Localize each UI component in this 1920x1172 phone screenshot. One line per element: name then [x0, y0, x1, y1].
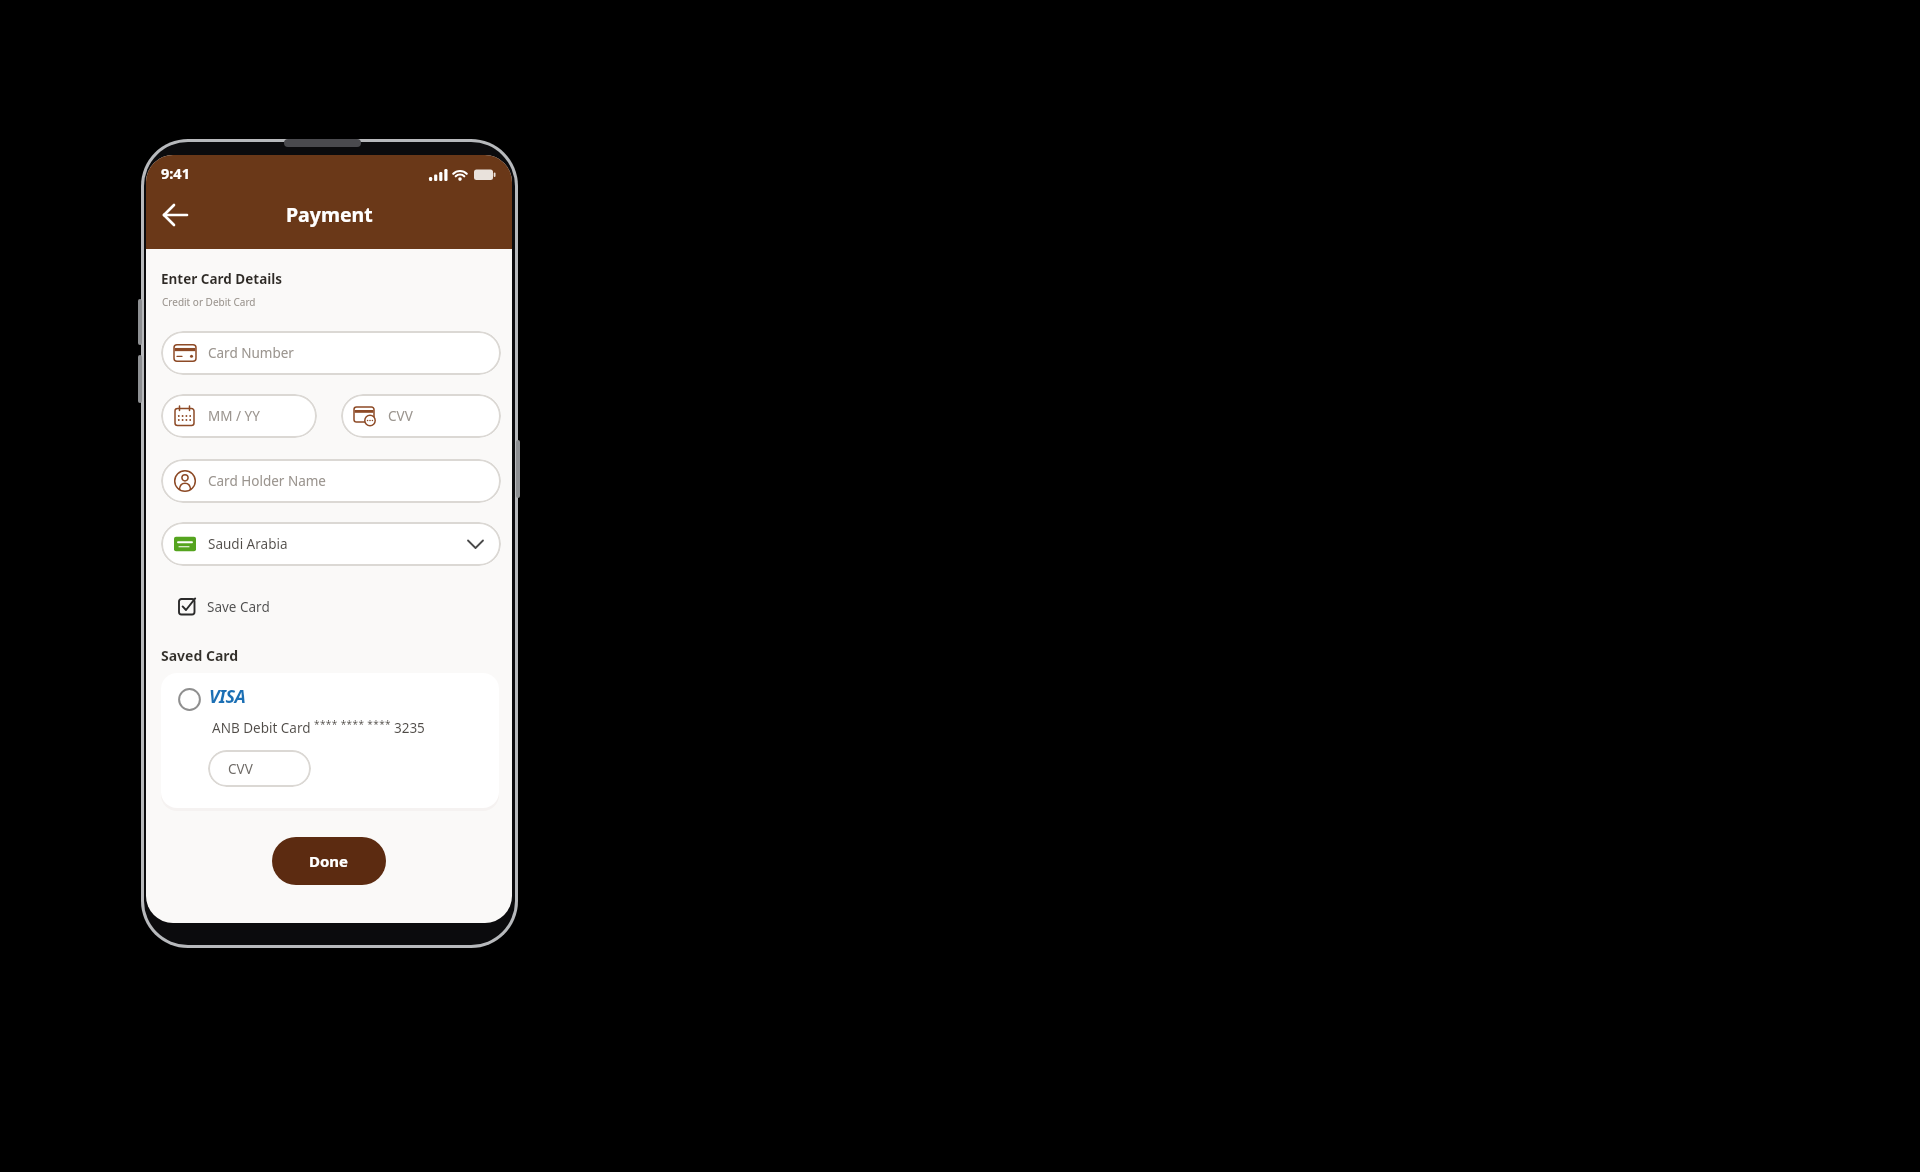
staticText: Saved Card [161, 646, 239, 665]
button[interactable]: CVV [341, 394, 501, 438]
staticText: Payment [286, 201, 373, 228]
button[interactable]: Save Card [170, 589, 300, 623]
staticText: Save Card [207, 598, 270, 616]
button[interactable] [155, 196, 195, 234]
button[interactable]: Card Holder Name [161, 459, 501, 503]
staticText: CVV [388, 407, 413, 425]
staticText: 9:41 [161, 163, 190, 183]
button[interactable]: Card Number [161, 331, 501, 375]
staticText: Enter Card Details [161, 270, 283, 288]
button[interactable]: Saudi Arabia [161, 522, 501, 566]
staticText: CVV [228, 760, 253, 778]
button[interactable]: Done [272, 837, 386, 885]
staticText: Card Number [208, 344, 294, 362]
staticText: Credit or Debit Card [162, 295, 256, 309]
button[interactable]: CVV [208, 750, 311, 787]
staticText: MM / YY [208, 407, 260, 425]
staticText: Card Holder Name [208, 472, 326, 490]
staticText: Done [309, 851, 349, 871]
staticText: ANB Debit Card **** **** **** 3235 [212, 717, 425, 737]
button[interactable]: MM / YY [161, 394, 317, 438]
button[interactable]: VISA [161, 673, 499, 808]
staticText: Saudi Arabia [208, 535, 288, 553]
staticText: VISA [209, 684, 246, 709]
